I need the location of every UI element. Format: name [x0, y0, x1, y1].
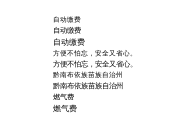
staticText: 燃气费: [53, 104, 77, 114]
staticText: 自动缴费: [53, 26, 81, 35]
staticText: 自动缴费: [53, 15, 81, 24]
staticText: 黔南布依族苗族自治州: [53, 81, 123, 90]
staticText: 方便不怕忘，安全又省心。: [53, 59, 137, 69]
staticText: 自动缴费: [53, 37, 85, 47]
staticText: 燃气费: [53, 92, 74, 101]
staticText: 方便不怕忘，安全又省心。: [53, 49, 137, 57]
staticText: 黔南布依族苗族自治州: [53, 71, 123, 79]
